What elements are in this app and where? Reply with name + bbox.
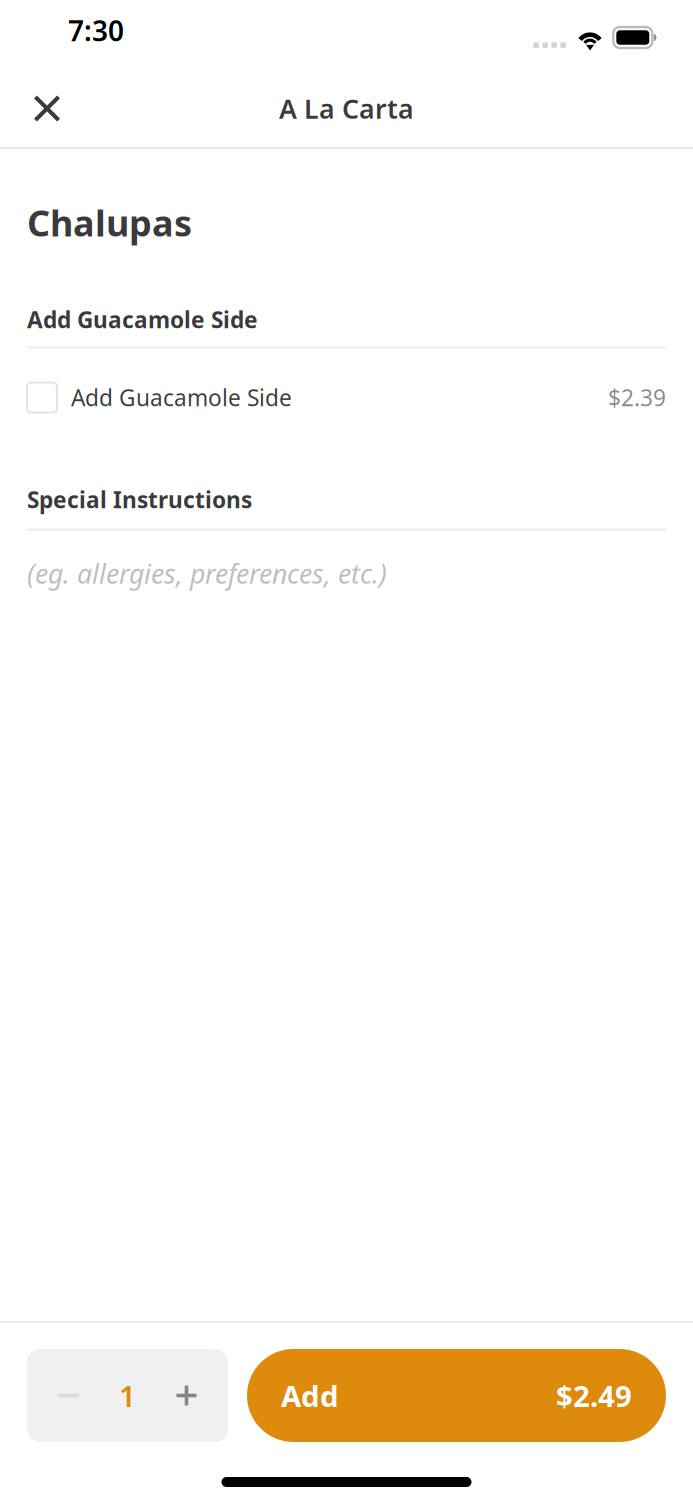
staticText: $2.39 [608,382,666,413]
staticText: 7:30 [68,12,124,49]
staticText: Special Instructions [27,484,252,515]
button[interactable]: Increase quantity [145,1349,228,1442]
staticText: A La Carta [279,91,414,126]
staticText: Chalupas [27,199,192,246]
button[interactable]: Close [0,70,94,147]
staticText: Add Guacamole Side [27,304,258,334]
staticText: 1 [119,1376,136,1415]
staticText: Add [281,1376,339,1415]
staticText: $2.49 [556,1376,632,1415]
button[interactable]: Add Guacamole Side [27,370,666,424]
button[interactable]: Add [247,1349,666,1442]
staticText: (eg. allergies, preferences, etc.) [27,556,387,591]
staticText: Add Guacamole Side [71,382,292,413]
